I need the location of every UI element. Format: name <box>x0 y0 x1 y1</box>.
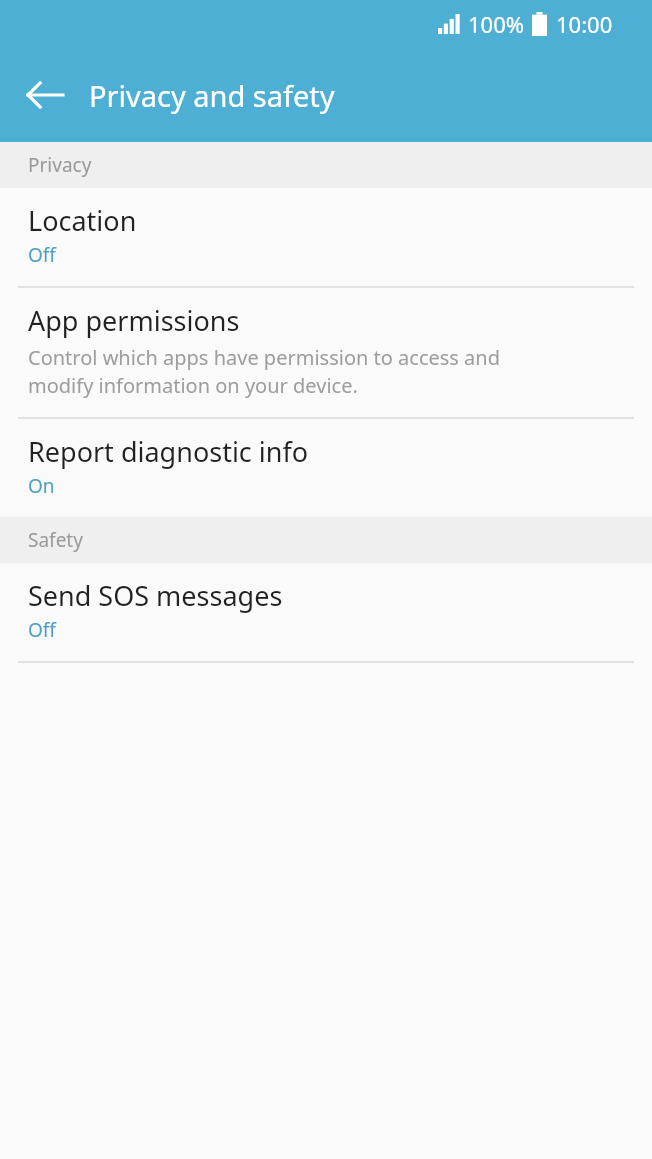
button[interactable]: Report diagnostic info <box>0 419 652 517</box>
staticText: Report diagnostic info <box>28 437 309 469</box>
staticText: 100% <box>468 9 525 39</box>
staticText: Off <box>28 242 56 268</box>
staticText: App permissions <box>28 306 240 338</box>
staticText: Off <box>28 617 56 643</box>
button[interactable]: App permissions <box>0 288 652 417</box>
button[interactable]: Send SOS messages <box>0 563 652 661</box>
staticText: Send SOS messages <box>28 581 283 613</box>
button[interactable]: Back <box>10 60 80 130</box>
staticText: On <box>28 473 55 499</box>
staticText: Privacy and safety <box>89 76 335 115</box>
staticText: 10:00 <box>556 9 613 39</box>
staticText: Location <box>28 206 137 238</box>
staticText: Privacy <box>28 152 92 178</box>
button[interactable]: Location <box>0 188 652 286</box>
staticText: Control which apps have permission to ac… <box>28 343 500 399</box>
staticText: Safety <box>28 527 83 553</box>
